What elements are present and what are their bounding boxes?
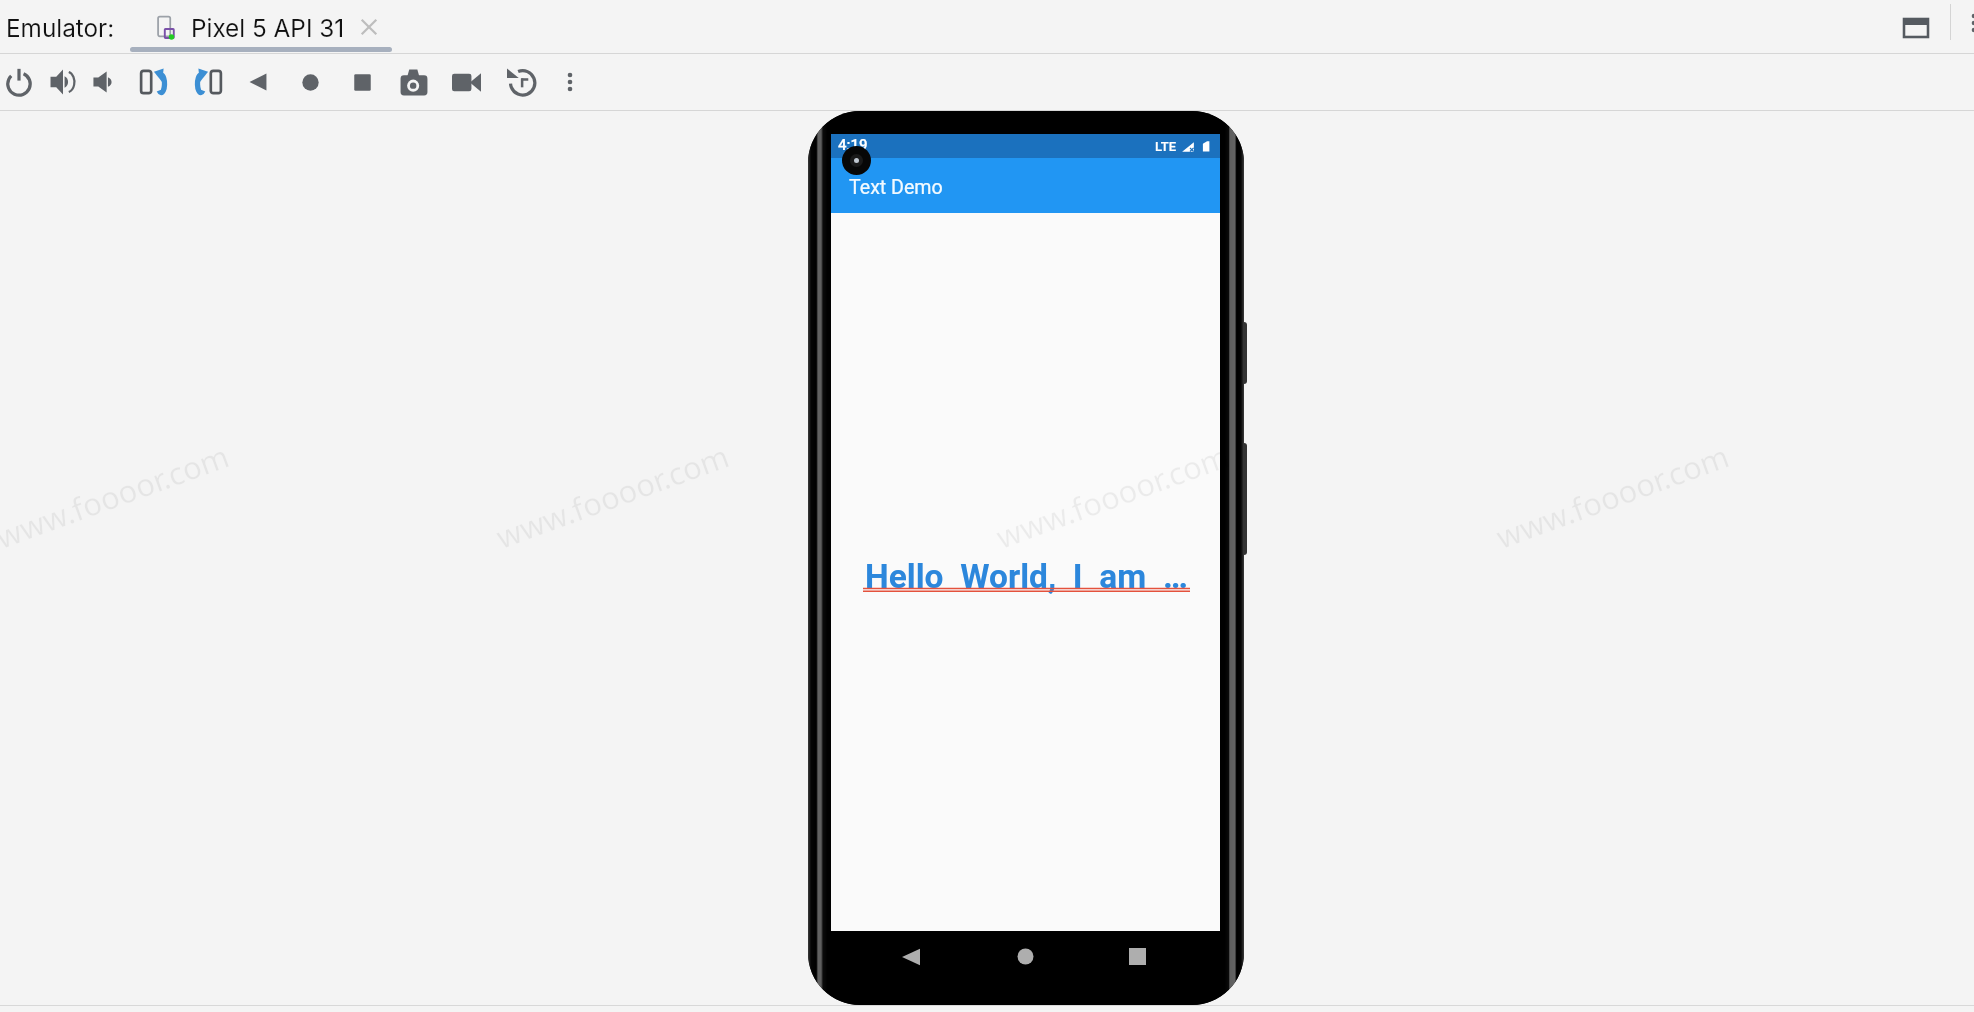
staticText: Hello World, I am … — [865, 557, 1188, 596]
button[interactable]: Back — [888, 931, 934, 982]
button[interactable]: Back — [236, 54, 280, 110]
button[interactable]: Volume up — [41, 54, 85, 110]
button[interactable]: Rotate left — [132, 54, 176, 110]
button[interactable]: Window layout — [1901, 13, 1931, 43]
button[interactable]: Overview — [340, 54, 384, 110]
staticText: Text Demo — [849, 176, 943, 199]
button[interactable]: Rotate history — [499, 54, 543, 110]
button[interactable]: Pixel 5 API 31 — [130, 0, 404, 53]
staticText: Pixel 5 API 31 — [191, 13, 345, 42]
button[interactable]: Power — [0, 54, 41, 110]
button[interactable]: More — [548, 54, 592, 110]
button[interactable]: Rotate right — [186, 54, 230, 110]
staticText: www.foooor.com — [990, 434, 1235, 558]
button[interactable]: Take screenshot — [392, 54, 436, 110]
button[interactable]: Volume down — [82, 54, 126, 110]
staticText: Emulator: — [6, 13, 115, 42]
button[interactable]: Record screen — [444, 54, 488, 110]
staticText: 4:19 — [838, 136, 868, 154]
button[interactable]: Home — [288, 54, 332, 110]
button[interactable]: Recent apps — [1114, 931, 1160, 982]
button[interactable]: More options — [1963, 12, 1974, 34]
staticText: LTE — [1155, 139, 1176, 154]
button[interactable]: Home — [1002, 931, 1048, 982]
